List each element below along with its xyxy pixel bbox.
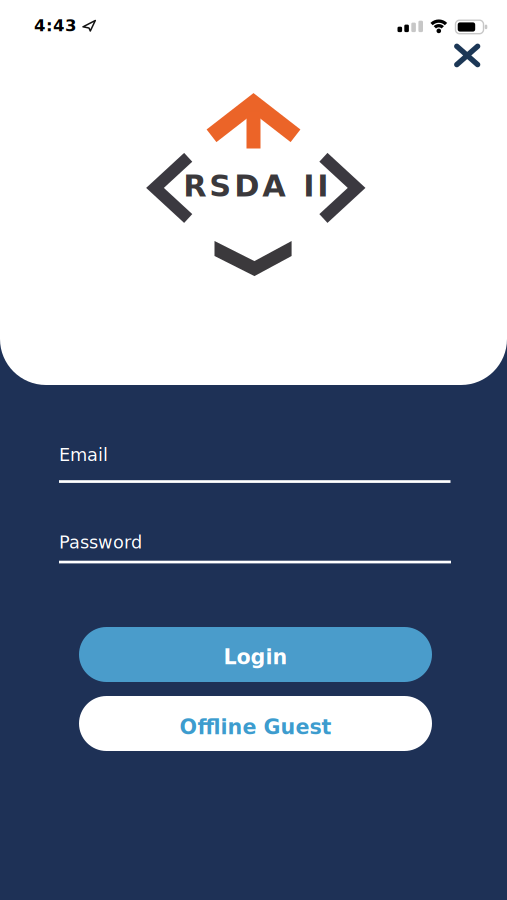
staticText: Email [59, 445, 108, 465]
staticText: Login [223, 645, 287, 669]
button[interactable]: Password [59, 532, 451, 564]
staticText: Password [59, 532, 142, 553]
staticText: Offline Guest [179, 715, 331, 739]
button[interactable]: Close [445, 33, 489, 77]
button[interactable]: Login [79, 627, 432, 682]
button[interactable]: Email [59, 445, 450, 484]
staticText: RSDA II [183, 168, 328, 204]
staticText: 4:43 [34, 16, 77, 35]
button[interactable]: Offline Guest [79, 696, 432, 751]
